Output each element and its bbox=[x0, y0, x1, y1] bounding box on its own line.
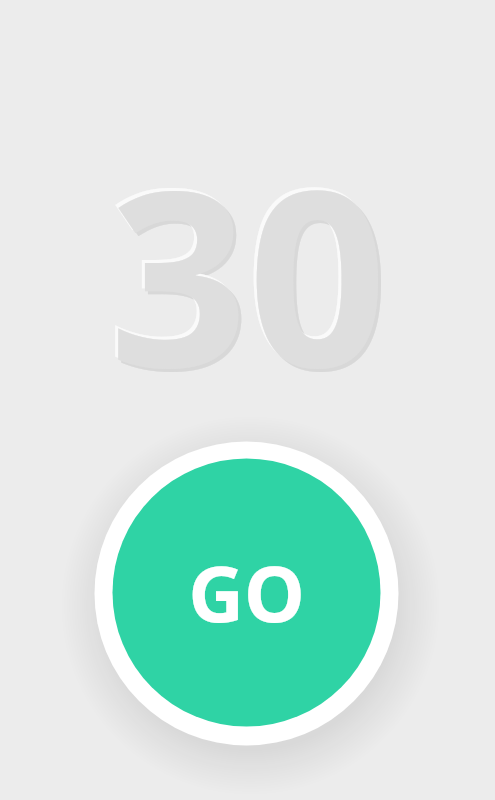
staticText: 30 bbox=[109, 107, 387, 438]
button[interactable]: GO bbox=[65, 406, 428, 769]
staticText: 30 bbox=[112, 110, 390, 441]
staticText: 30 bbox=[106, 104, 384, 435]
staticText: GO bbox=[188, 540, 305, 645]
